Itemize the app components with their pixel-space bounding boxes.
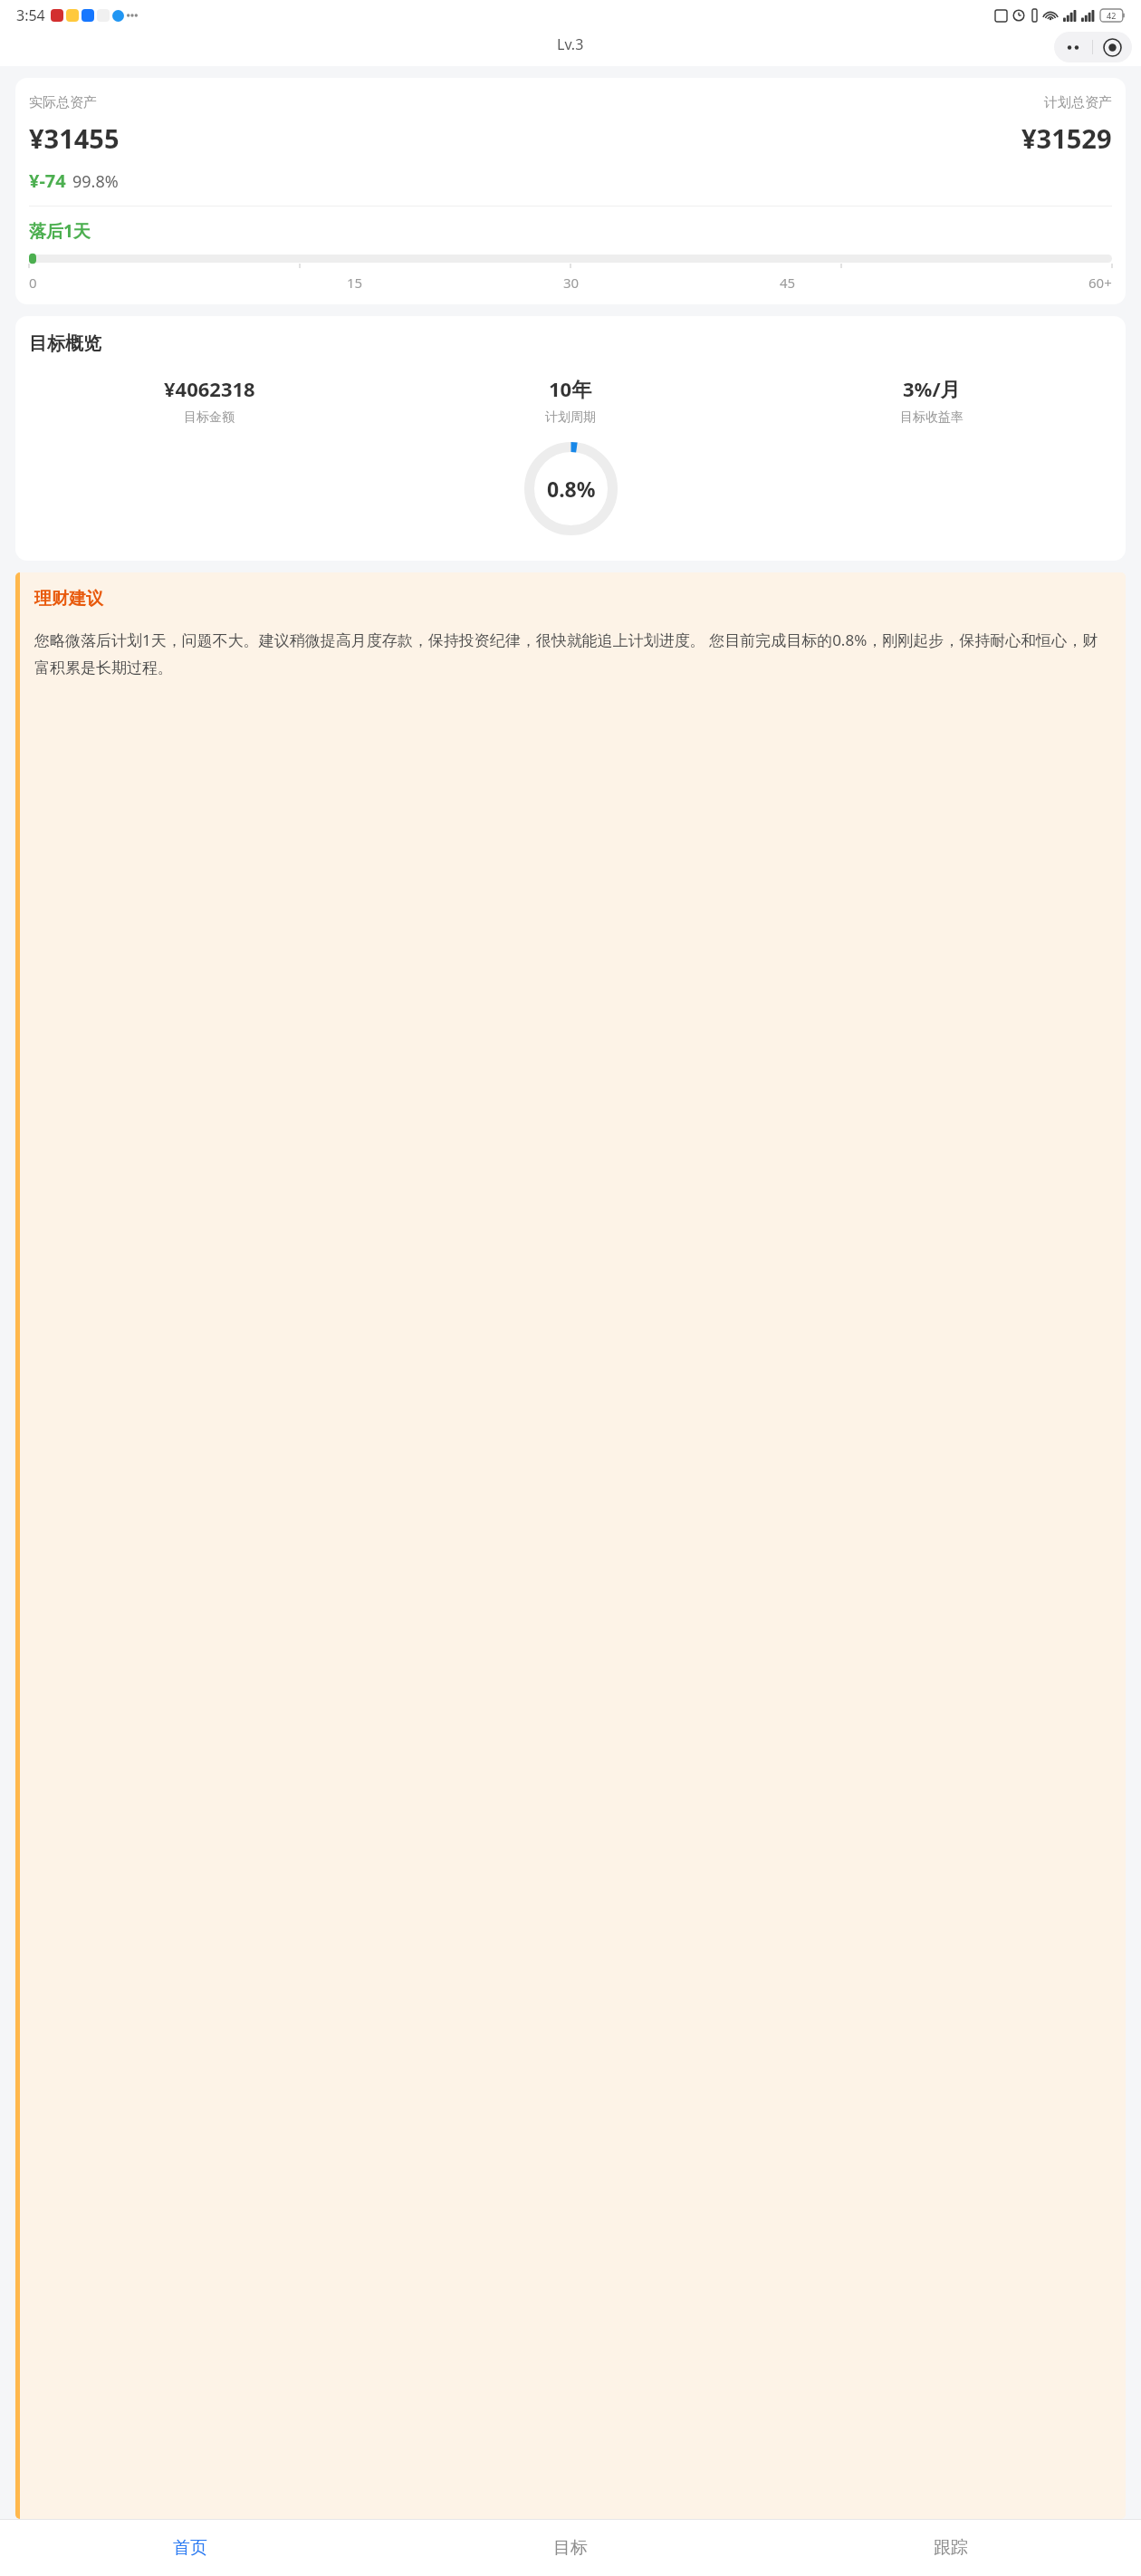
staticText: 计划总资产 [1044,94,1112,111]
button[interactable]: 实际总资产 [15,78,1126,304]
staticText: 目标概览 [29,332,101,355]
staticText: 45 [780,274,796,292]
button[interactable]: 理财建议 [15,572,1126,2519]
staticText: 您略微落后计划1天，问题不大。建议稍微提高月度存款，保持投资纪律，很快就能追上计… [34,630,1113,678]
button[interactable]: More options [1054,32,1092,62]
staticText: 15 [347,274,363,292]
staticText: 3%/月 [903,375,961,402]
staticText: 落后1天 [29,219,91,243]
staticText: 计划周期 [545,409,596,426]
staticText: 目标金额 [184,409,235,426]
staticText: 0 [29,274,37,292]
button[interactable]: 目标概览 [15,316,1126,561]
staticText: ¥31529 [1021,120,1112,156]
staticText: ¥4062318 [164,375,255,402]
button[interactable]: Close [1093,32,1132,62]
staticText: 42 [1107,10,1117,21]
staticText: 跟踪 [934,2537,968,2559]
staticText: ¥-74 [29,168,66,193]
staticText: 30 [563,274,580,292]
staticText: ¥31455 [29,120,120,156]
staticText: 60+ [1088,274,1112,292]
staticText: 0.8% [547,475,596,503]
staticText: Lv.3 [557,34,584,54]
staticText: 实际总资产 [29,94,97,111]
staticText: 首页 [173,2537,207,2559]
button[interactable]: 目标 [380,2520,761,2576]
staticText: 目标 [553,2537,588,2559]
staticText: 理财建议 [34,588,103,610]
button[interactable]: 跟踪 [761,2520,1141,2576]
staticText: 99.8% [72,170,119,193]
staticText: 10年 [549,375,592,402]
staticText: 3:54 [16,5,45,25]
button[interactable]: 首页 [0,2520,380,2576]
staticText: 目标收益率 [900,409,964,426]
